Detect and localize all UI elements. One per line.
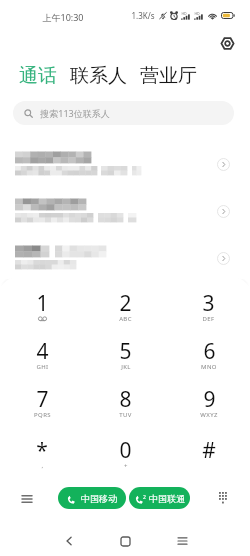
button[interactable]: 1 [0,289,84,329]
staticText: MNO [201,363,217,371]
button[interactable]: Menu [14,486,39,511]
button[interactable]: 营业厅 [138,62,199,90]
staticText: + [124,462,128,470]
staticText: PQRS [34,411,51,419]
button[interactable]: Contact details [213,201,233,221]
staticText: 中国联通 [149,493,185,504]
staticText: 9 [203,385,216,414]
staticText: 6 [203,337,216,366]
button[interactable]: 9 [167,385,250,425]
staticText: 中国移动 [81,493,117,504]
staticText: 通话 [19,64,57,88]
staticText: 7 [36,385,49,414]
button[interactable]: Keypad [211,485,236,510]
staticText: DEF [202,315,215,323]
button[interactable]: Recents [166,525,198,556]
button[interactable]: Contact details [0,235,250,282]
button[interactable]: 4 [0,337,84,377]
staticText: 3 [202,289,215,318]
staticText: 搜索113位联系人 [40,107,110,119]
button[interactable]: 0 [84,436,167,476]
button[interactable]: 6 [167,337,250,377]
button[interactable]: 8 [84,385,167,425]
staticText: * [36,436,48,465]
button[interactable]: Contact details [0,141,250,188]
staticText: 5 [119,337,132,366]
staticText: 1 [36,289,49,318]
button[interactable]: 通话 [17,62,59,90]
staticText: 上午10:30 [42,11,84,23]
staticText: 0 [119,436,132,465]
staticText: GHI [36,363,49,371]
staticText: 4 [36,337,49,366]
staticText: 1.3K/s [131,10,155,21]
staticText: JKL [121,363,131,371]
staticText: , [41,462,44,470]
staticText: TUV [119,411,132,419]
staticText: WXYZ [200,411,218,419]
button[interactable]: Contact details [0,188,250,235]
staticText: 2 [119,289,132,318]
button[interactable]: Back [53,525,85,556]
staticText: HD [194,11,200,16]
staticText: 2 [143,494,146,501]
staticText: ABC [119,315,132,323]
staticText: 营业厅 [140,64,197,88]
button[interactable]: 联系人 [68,62,129,90]
button[interactable]: # [167,436,250,476]
button[interactable]: * [0,436,84,476]
button[interactable]: 2 [84,289,167,329]
button[interactable]: Contact details [213,248,233,268]
button[interactable]: Home [109,525,141,556]
button[interactable]: 7 [0,385,84,425]
staticText: 联系人 [70,64,127,88]
staticText: HD [181,11,187,16]
staticText: # [202,436,216,465]
button[interactable]: 中国移动 [58,487,126,509]
button[interactable]: 3 [167,289,250,329]
button[interactable]: Settings [215,31,239,55]
button[interactable]: 5 [84,337,167,377]
staticText: 8 [119,385,132,414]
button[interactable]: Contact details [213,154,233,174]
button[interactable]: 2 [129,487,190,509]
button[interactable]: 搜索113位联系人 [13,101,234,125]
